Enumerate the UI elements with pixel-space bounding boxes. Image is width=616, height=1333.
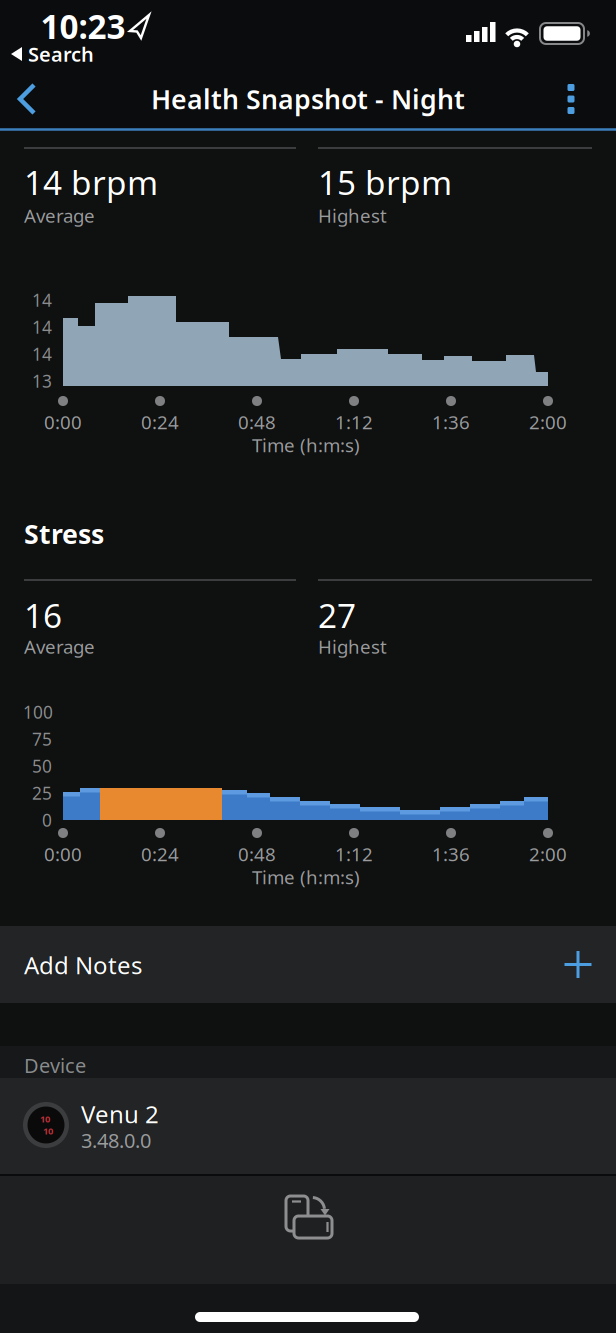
staticText: 100 <box>23 700 53 723</box>
staticText: 15 brpm <box>318 160 452 204</box>
staticText: Average <box>24 634 95 659</box>
staticText: 10 <box>40 1113 50 1125</box>
staticText: 0:48 <box>238 842 276 866</box>
staticText: 0:00 <box>44 410 82 434</box>
button[interactable]: Rotate to landscape <box>0 1176 616 1284</box>
staticText: 14 brpm <box>24 160 158 204</box>
staticText: 16 <box>24 593 62 637</box>
button[interactable]: Add Notes <box>0 926 616 1003</box>
staticText: 50 <box>32 754 52 777</box>
staticText: 75 <box>32 727 52 750</box>
staticText: 0:24 <box>141 410 179 434</box>
staticText: 1:36 <box>432 410 470 434</box>
staticText: 27 <box>318 593 356 637</box>
staticText: 14 <box>32 288 52 311</box>
staticText: 0 <box>42 808 52 831</box>
staticText: 0:00 <box>44 842 82 866</box>
staticText: 25 <box>32 781 52 804</box>
staticText: 13 <box>32 369 52 392</box>
button[interactable]: Back <box>0 77 48 121</box>
button[interactable]: 10 <box>0 1078 616 1174</box>
staticText: 0:48 <box>238 410 276 434</box>
staticText: Add Notes <box>24 949 142 981</box>
staticText: 14 <box>32 315 52 338</box>
staticText: 10 <box>43 1125 53 1137</box>
staticText: 2:00 <box>529 842 567 866</box>
staticText: 1:12 <box>335 410 373 434</box>
staticText: Health Snapshot - Night <box>151 81 465 117</box>
staticText: Venu 2 <box>81 1098 159 1130</box>
staticText: Search <box>28 41 94 67</box>
staticText: 10:23 <box>40 4 125 48</box>
staticText: 1:36 <box>432 842 470 866</box>
button[interactable]: More options <box>549 77 593 121</box>
staticText: 14 <box>32 342 52 365</box>
staticText: 3.48.0.0 <box>81 1127 151 1154</box>
staticText: Average <box>24 203 95 228</box>
staticText: Highest <box>318 203 387 228</box>
staticText: Device <box>24 1052 86 1079</box>
staticText: Time (h:m:s) <box>252 433 360 457</box>
staticText: Stress <box>24 516 104 551</box>
staticText: 1:12 <box>335 842 373 866</box>
staticText: 2:00 <box>529 410 567 434</box>
staticText: 0:24 <box>141 842 179 866</box>
staticText: Time (h:m:s) <box>252 865 360 889</box>
staticText: Highest <box>318 634 387 659</box>
